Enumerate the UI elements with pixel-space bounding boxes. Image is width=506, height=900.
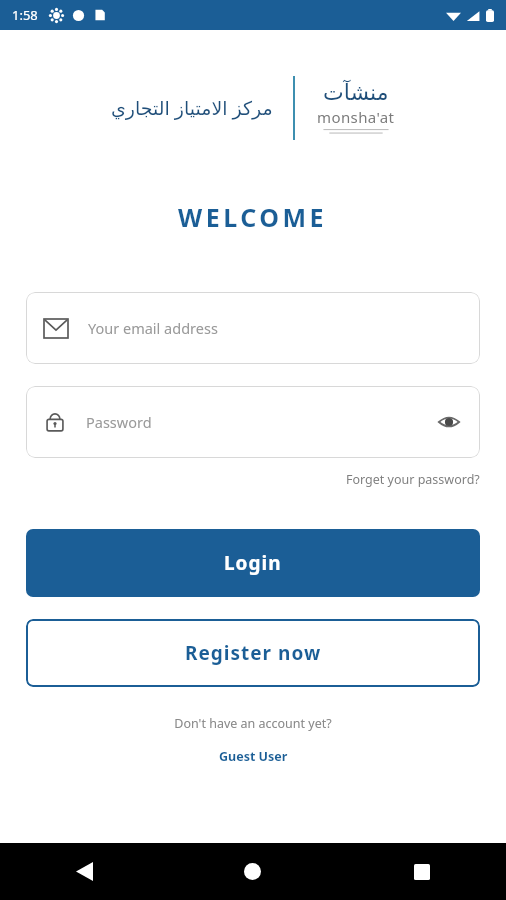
other: Email — [44, 319, 68, 338]
button[interactable]: Show password — [436, 409, 462, 435]
button[interactable]: Password — [26, 386, 480, 458]
staticText: Forget your password? — [346, 471, 480, 488]
staticText: WELCOME — [178, 200, 328, 234]
staticText: مركز الامتياز التجاري — [111, 95, 273, 121]
button[interactable]: Back — [0, 843, 168, 900]
button[interactable]: Email — [26, 292, 480, 364]
button[interactable]: Forget your password? — [346, 468, 480, 491]
other: Password — [44, 411, 66, 433]
button[interactable]: Home — [168, 843, 337, 900]
button[interactable]: Register now — [26, 619, 480, 687]
staticText: Guest User — [219, 748, 288, 765]
button[interactable]: Login — [26, 529, 480, 597]
staticText: 1:58 — [12, 6, 38, 24]
staticText: Register now — [185, 640, 322, 666]
staticText: منشآت — [323, 80, 389, 106]
staticText: Login — [224, 550, 282, 576]
button[interactable]: Recents — [337, 843, 506, 900]
button[interactable]: Guest User — [213, 746, 294, 767]
staticText: monsha'at — [317, 107, 395, 127]
staticText: Password — [86, 412, 436, 432]
staticText: Don't have an account yet? — [174, 715, 332, 732]
staticText: Your email address — [88, 318, 462, 338]
